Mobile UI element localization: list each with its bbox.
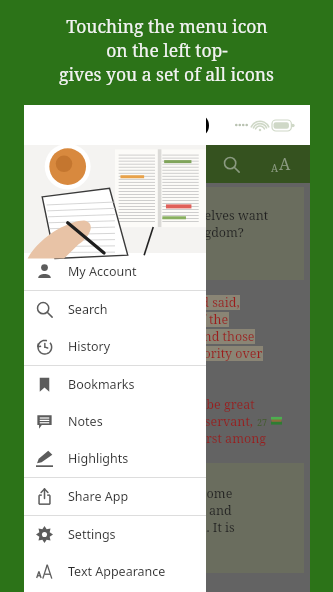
- staticText: “You know that the rulers of the: [38, 311, 229, 328]
- staticText: Text Appearance: [68, 563, 166, 580]
- staticText: A: [271, 161, 279, 175]
- staticText: Highlights: [68, 450, 129, 467]
- button[interactable]: My Account: [24, 253, 206, 290]
- staticText: among you, let him be your servant,: [38, 413, 257, 430]
- staticText: Touching the menu icon: [66, 14, 268, 38]
- staticText: It shall not be so among: [38, 379, 180, 396]
- staticText: Bookmarks: [68, 376, 135, 393]
- staticText: Why do the disciples themselves want: [42, 207, 269, 224]
- button[interactable]: History: [24, 328, 206, 365]
- button[interactable]: Text Appearance: [24, 553, 206, 590]
- button[interactable]: Share App: [24, 478, 206, 515]
- staticText: Share App: [68, 488, 129, 505]
- staticText: you; but whoever desires to be great: [38, 396, 255, 413]
- staticText: a matter of perspective for: [42, 536, 201, 553]
- button[interactable]: Text Appearance: [268, 151, 294, 177]
- staticText: gives you a set of all icons: [59, 62, 274, 86]
- staticText: and whoever desires to be first among: [38, 430, 266, 447]
- button[interactable]: Highlights: [24, 440, 206, 477]
- staticText: to be the greatest in the kingdom?: [42, 224, 244, 241]
- staticText: who are great exercise authority over: [38, 345, 263, 362]
- staticText: them.: [38, 362, 72, 379]
- button[interactable]: Search: [218, 151, 244, 177]
- button[interactable]: Settings: [24, 516, 206, 553]
- staticText: 27: [257, 416, 268, 428]
- staticText: again for all to be seen men. It is: [42, 519, 235, 536]
- staticText: Gentiles lord it over them, and those: [38, 328, 255, 345]
- staticText: on the left top-: [106, 38, 228, 62]
- staticText: Search: [68, 301, 108, 318]
- button[interactable]: Notes: [24, 403, 206, 440]
- staticText: History: [68, 338, 111, 355]
- staticText: Jesus called them to him and said,: [38, 294, 240, 311]
- staticText: My Account: [68, 263, 137, 280]
- button[interactable]: Bookmarks: [24, 366, 206, 403]
- staticText: A: [279, 153, 291, 175]
- staticText: commentators note it again and: [42, 502, 232, 519]
- staticText: Notes: [68, 413, 103, 430]
- staticText: Settings: [68, 526, 116, 543]
- button[interactable]: Search: [24, 291, 206, 328]
- staticText: See study note on Mt 18:4. Some: [42, 485, 233, 502]
